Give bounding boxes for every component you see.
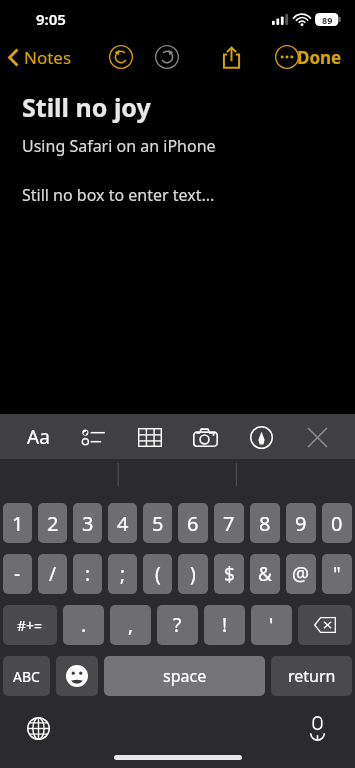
button[interactable]: Camera (185, 419, 225, 455)
button[interactable]: Notes (0, 42, 78, 73)
staticText: Done (297, 46, 342, 69)
staticText: 8 (259, 510, 271, 537)
staticText: 7 (223, 510, 235, 537)
staticText: return (288, 665, 336, 687)
staticText: - (14, 561, 21, 587)
staticText: 0 (331, 510, 343, 537)
button[interactable]: & (250, 554, 280, 594)
button[interactable]: return (271, 656, 352, 696)
button[interactable]: space (104, 656, 265, 696)
button[interactable]: Redo (150, 40, 184, 74)
staticText: 4 (117, 510, 129, 537)
button[interactable]: 7 (214, 503, 244, 543)
button[interactable]: 2 (38, 503, 67, 543)
button[interactable]: 6 (178, 503, 208, 543)
staticText: Notes (24, 46, 72, 69)
staticText: 6 (187, 510, 199, 537)
staticText: , (128, 612, 134, 638)
staticText: #+= (17, 616, 43, 635)
staticText: . (81, 612, 87, 638)
button[interactable]: 9 (286, 503, 316, 543)
staticText: ; (120, 561, 126, 587)
staticText: Using Safari on an iPhone (22, 135, 216, 157)
button[interactable]: ? (157, 605, 198, 645)
button[interactable]: ' (251, 605, 292, 645)
button[interactable]: 4 (108, 503, 137, 543)
staticText: ! (222, 612, 228, 638)
button[interactable]: @ (286, 554, 316, 594)
button[interactable]: Table (130, 419, 170, 455)
button[interactable]: 3 (73, 503, 102, 543)
button[interactable]: : (73, 554, 102, 594)
button[interactable]: ABC (3, 656, 50, 696)
staticText: @ (292, 561, 310, 587)
button[interactable]: / (38, 554, 67, 594)
button[interactable]: ! (204, 605, 245, 645)
staticText: ABC (13, 667, 40, 686)
button[interactable]: Dictation (297, 708, 337, 748)
button[interactable]: Done (289, 42, 355, 73)
button[interactable]: 0 (322, 503, 352, 543)
staticText: space (163, 665, 207, 687)
button[interactable]: , (110, 605, 151, 645)
button[interactable]: . (63, 605, 104, 645)
button[interactable]: Switch keyboard (18, 708, 58, 748)
staticText: Still no box to enter text... (22, 184, 215, 206)
staticText: 89 (322, 14, 333, 26)
button[interactable]: Delete (298, 605, 352, 645)
button[interactable]: 5 (143, 503, 172, 543)
staticText: ( (155, 561, 161, 587)
button[interactable]: Markup (241, 419, 281, 455)
staticText: ' (269, 612, 274, 638)
button[interactable]: 1 (3, 503, 32, 543)
staticText: ) (190, 561, 196, 587)
staticText: Aa (27, 424, 50, 450)
button[interactable]: Text format (18, 419, 58, 455)
button[interactable]: Close keyboard (297, 419, 337, 455)
button[interactable]: 8 (250, 503, 280, 543)
staticText: 9:05 (36, 9, 66, 29)
staticText: / (49, 561, 57, 587)
button[interactable]: More options (270, 40, 304, 74)
button[interactable]: #+= (3, 605, 57, 645)
button[interactable]: ) (178, 554, 208, 594)
button[interactable]: " (322, 554, 352, 594)
staticText: ? (173, 612, 182, 638)
button[interactable]: Emoji (56, 656, 98, 696)
staticText: Still no joy (22, 90, 151, 124)
staticText: 3 (82, 510, 94, 537)
button[interactable]: ( (143, 554, 172, 594)
staticText: : (85, 561, 91, 587)
button[interactable]: $ (214, 554, 244, 594)
button[interactable]: Undo (104, 40, 138, 74)
staticText: 1 (12, 510, 24, 537)
staticText: $ (224, 561, 235, 587)
button[interactable]: Share (214, 40, 248, 74)
staticText: 2 (47, 510, 59, 537)
staticText: 9 (295, 510, 307, 537)
staticText: " (333, 561, 341, 587)
button[interactable]: ; (108, 554, 137, 594)
staticText: & (258, 561, 272, 587)
button[interactable]: Checklist (74, 419, 114, 455)
staticText: 5 (152, 510, 164, 537)
button[interactable]: - (3, 554, 32, 594)
